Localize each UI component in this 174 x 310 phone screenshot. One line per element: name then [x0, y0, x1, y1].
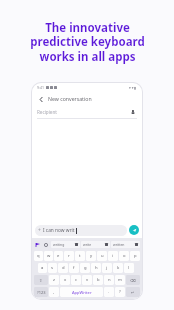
- button[interactable]: writing: [51, 241, 80, 248]
- button[interactable]: v: [82, 275, 92, 285]
- staticText: AppWriter: [72, 290, 92, 295]
- button[interactable]: n: [104, 275, 114, 285]
- staticText: u: [101, 253, 104, 259]
- staticText: o: [123, 253, 126, 259]
- button[interactable]: z: [49, 275, 59, 285]
- button[interactable]: x: [60, 275, 70, 285]
- staticText: e: [57, 253, 60, 259]
- button[interactable]: g: [80, 263, 90, 273]
- button[interactable]: c: [71, 275, 81, 285]
- staticText: The innovative predictive keyboard works…: [30, 20, 145, 65]
- button[interactable]: s: [48, 263, 57, 273]
- staticText: l: [128, 265, 130, 271]
- staticText: ?: [119, 289, 121, 295]
- button[interactable]: written: [111, 241, 140, 248]
- button[interactable]: Backspace: [126, 275, 140, 285]
- button[interactable]: ?: [115, 287, 125, 297]
- button[interactable]: e: [54, 251, 63, 261]
- staticText: ▾ ▾ ▮: [129, 85, 137, 90]
- button[interactable]: k: [113, 263, 123, 273]
- button[interactable]: p: [130, 251, 140, 261]
- staticText: m: [118, 277, 122, 283]
- staticText: a: [41, 265, 44, 271]
- staticText: t: [79, 253, 81, 259]
- staticText: ⇧: [39, 278, 43, 283]
- button[interactable]: Backspace: [34, 287, 48, 297]
- staticText: n: [108, 277, 111, 283]
- staticText: z: [53, 277, 55, 283]
- button[interactable]: Back: [36, 94, 46, 104]
- button[interactable]: Theme: [34, 241, 42, 249]
- staticText: writing: [53, 242, 65, 247]
- button[interactable]: Settings: [42, 241, 50, 249]
- button[interactable]: r: [64, 251, 74, 261]
- staticText: Recipient: [37, 109, 57, 115]
- button[interactable]: d: [58, 263, 68, 273]
- button[interactable]: t: [75, 251, 85, 261]
- staticText: ?123: [37, 290, 46, 295]
- staticText: s: [51, 265, 54, 271]
- button[interactable]: h: [91, 263, 101, 273]
- staticText: written: [113, 242, 125, 247]
- button[interactable]: write: [81, 241, 110, 248]
- button[interactable]: m: [115, 275, 125, 285]
- staticText: p: [134, 253, 137, 259]
- button[interactable]: .: [104, 287, 114, 297]
- staticText: k: [117, 265, 120, 271]
- staticText: x: [64, 277, 67, 283]
- staticText: f: [73, 265, 75, 271]
- staticText: h: [95, 265, 98, 271]
- staticText: y: [90, 253, 93, 259]
- staticText: j: [106, 265, 108, 271]
- button[interactable]: AppWriter: [60, 287, 103, 297]
- button[interactable]: Shift: [34, 275, 48, 285]
- button[interactable]: u: [97, 251, 107, 261]
- staticText: i: [112, 253, 114, 259]
- button[interactable]: b: [93, 275, 103, 285]
- staticText: New conversation: [48, 95, 92, 102]
- button[interactable]: y: [86, 251, 96, 261]
- staticText: q: [37, 253, 40, 259]
- staticText: r: [68, 253, 70, 259]
- button[interactable]: w: [44, 251, 53, 261]
- staticText: write: [83, 242, 92, 247]
- staticText: d: [62, 265, 65, 271]
- button[interactable]: a: [38, 263, 47, 273]
- button[interactable]: Send: [129, 225, 139, 235]
- button[interactable]: i: [108, 251, 118, 261]
- staticText: v: [86, 277, 89, 283]
- staticText: +: [38, 227, 41, 234]
- staticText: c: [75, 277, 78, 283]
- button[interactable]: l: [124, 263, 134, 273]
- staticText: .: [108, 289, 110, 295]
- button[interactable]: q: [34, 251, 43, 261]
- staticText: I can now writ: [43, 227, 75, 234]
- button[interactable]: j: [102, 263, 112, 273]
- button[interactable]: f: [69, 263, 79, 273]
- staticText: ↵: [131, 290, 135, 295]
- button[interactable]: +: [35, 225, 127, 236]
- button[interactable]: Contacts: [129, 108, 137, 116]
- button[interactable]: o: [119, 251, 129, 261]
- button[interactable]: ,: [49, 287, 59, 297]
- staticText: g: [84, 265, 87, 271]
- staticText: ,: [53, 289, 55, 295]
- staticText: ⌫: [130, 278, 136, 283]
- button[interactable]: Backspace: [126, 287, 140, 297]
- staticText: b: [97, 277, 100, 283]
- staticText: 9:41: [37, 85, 44, 90]
- staticText: w: [47, 253, 51, 259]
